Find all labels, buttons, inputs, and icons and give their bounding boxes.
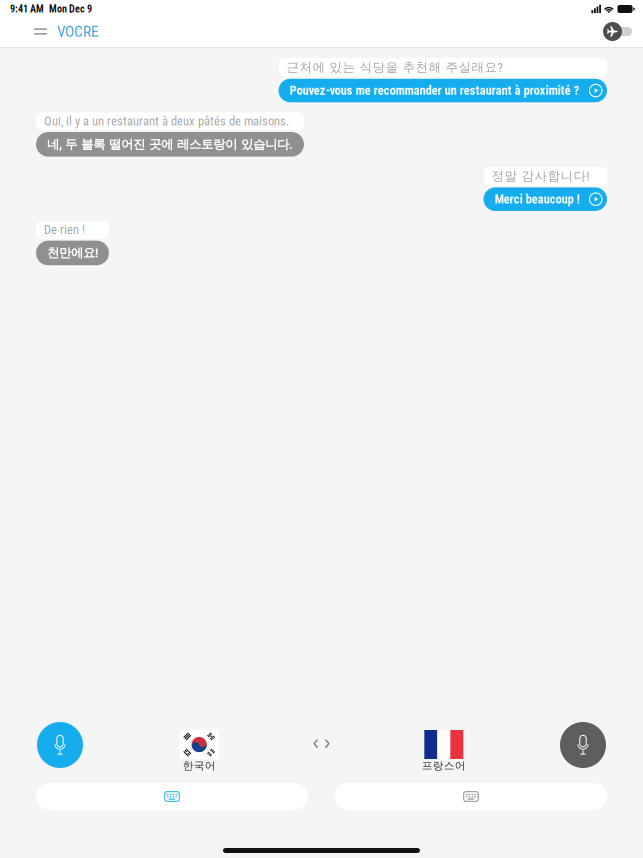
staticText: 천만에요! (47, 245, 98, 261)
staticText: Pouvez-vous me recommander un restaurant… (289, 83, 579, 98)
button[interactable]: 네, 두 블록 떨어진 곳에 레스토랑이 있습니다. (36, 132, 304, 157)
button[interactable]: Type in Korean (36, 783, 308, 810)
staticText: VOCRE (57, 22, 99, 40)
button[interactable]: 프랑스어 (413, 730, 475, 772)
button[interactable]: 한국어 (168, 730, 230, 772)
button[interactable]: Offline translation (600, 18, 635, 45)
staticText: 근처에 있는 식당을 추천해 주실래요? (286, 59, 502, 75)
staticText: 정말 감사합니다! (491, 168, 589, 184)
button[interactable]: Switch translation direction (306, 732, 337, 755)
button[interactable]: Menu (27, 19, 54, 44)
staticText: De rien ! (44, 222, 85, 237)
button[interactable]: Speak Korean (37, 722, 83, 768)
staticText: Merci beaucoup ! (494, 192, 579, 206)
button[interactable]: Speak French (560, 722, 606, 768)
button[interactable]: Type in French (335, 783, 607, 810)
button[interactable]: Pouvez-vous me recommander un restaurant… (278, 79, 607, 102)
staticText: Oui, il y a un restaurant à deux pâtés d… (44, 114, 289, 128)
staticText: 9:41 AM (10, 3, 44, 15)
staticText: 프랑스어 (422, 759, 466, 772)
staticText: 네, 두 블록 떨어진 곳에 레스토랑이 있습니다. (47, 136, 293, 152)
staticText: 한국어 (183, 759, 216, 772)
button[interactable]: 천만에요! (36, 241, 109, 265)
button[interactable]: Merci beaucoup ! (483, 187, 607, 211)
staticText: Mon Dec 9 (49, 3, 92, 15)
